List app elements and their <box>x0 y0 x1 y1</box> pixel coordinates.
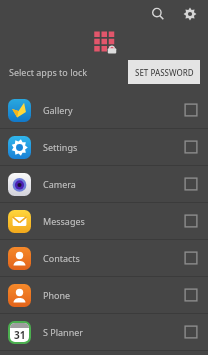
button[interactable]: Settings <box>177 1 203 27</box>
button[interactable]: Contacts <box>0 240 208 276</box>
staticText: Gallery <box>43 104 73 116</box>
staticText: Contacts <box>43 252 80 264</box>
staticText: SET PASSWORD <box>135 67 194 78</box>
button[interactable]: Gallery <box>0 92 208 128</box>
staticText: Select apps to lock <box>9 66 88 78</box>
staticText: 31 <box>14 328 26 342</box>
button[interactable]: Phone <box>0 277 208 313</box>
button[interactable]: Camera <box>0 166 208 202</box>
button[interactable]: 31 <box>0 314 208 350</box>
staticText: S Planner <box>43 326 84 338</box>
staticText: Phone <box>43 289 71 301</box>
button[interactable]: Settings <box>0 129 208 165</box>
staticText: Camera <box>43 178 76 190</box>
staticText: Messages <box>43 215 85 227</box>
button[interactable]: Search <box>145 1 171 27</box>
staticText: Settings <box>43 141 78 153</box>
button[interactable]: Messages <box>0 203 208 239</box>
button[interactable]: SET PASSWORD <box>128 60 200 84</box>
